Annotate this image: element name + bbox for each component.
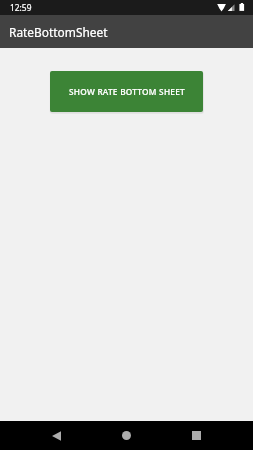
- button[interactable]: Back: [42, 421, 71, 450]
- staticText: RateBottomSheet: [9, 24, 108, 40]
- staticText: 12:59: [10, 2, 32, 13]
- button[interactable]: Home: [112, 421, 141, 450]
- button[interactable]: SHOW RATE BOTTOM SHEET: [50, 71, 203, 112]
- staticText: SHOW RATE BOTTOM SHEET: [69, 86, 185, 97]
- button[interactable]: Recent apps: [182, 421, 211, 450]
